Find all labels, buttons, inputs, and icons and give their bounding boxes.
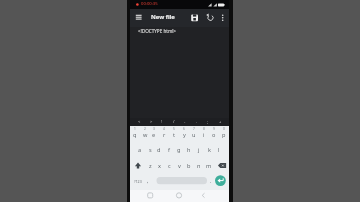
staticText: ?123 <box>134 179 142 184</box>
staticText: l <box>218 146 220 154</box>
staticText: New file <box>151 13 175 21</box>
staticText: e <box>152 131 156 139</box>
staticText: . <box>210 177 212 184</box>
staticText: b <box>187 162 191 170</box>
staticText: 2 <box>144 127 146 131</box>
staticText: j <box>198 146 200 154</box>
staticText: z <box>149 162 152 170</box>
staticText: < <box>138 119 141 124</box>
staticText: 3 <box>153 127 155 131</box>
staticText: d <box>157 146 161 154</box>
staticText: n <box>197 162 201 170</box>
staticText: 9 <box>213 127 215 131</box>
staticText: 00:00:35 <box>141 1 158 7</box>
staticText: > <box>150 119 153 124</box>
staticText: f <box>168 146 170 154</box>
staticText: w <box>143 131 148 139</box>
staticText: q <box>133 131 137 139</box>
staticText: h <box>187 146 191 154</box>
staticText: 8 <box>203 127 205 131</box>
staticText: y <box>183 131 186 139</box>
staticText: s <box>149 146 152 154</box>
staticText: ; <box>207 119 209 124</box>
staticText: 5 <box>173 127 175 131</box>
staticText: 1 <box>134 127 136 131</box>
staticText: , <box>147 177 149 184</box>
staticText: <!DOCTYPE html> <box>138 28 176 34</box>
staticText: a <box>138 146 142 154</box>
staticText: / <box>173 119 175 124</box>
staticText: c <box>168 162 171 170</box>
staticText: + <box>219 119 222 124</box>
staticText: o <box>212 131 216 139</box>
staticText: m <box>206 162 212 170</box>
staticText: g <box>177 146 181 154</box>
staticText: 7 <box>193 127 195 131</box>
staticText: ! <box>161 119 163 124</box>
staticText: i <box>203 131 205 139</box>
staticText: t <box>173 131 176 139</box>
staticText: u <box>192 131 196 139</box>
staticText: r <box>163 131 166 139</box>
staticText: k <box>208 146 211 154</box>
staticText: p <box>222 131 226 139</box>
staticText: v <box>178 162 181 170</box>
staticText: . <box>196 119 198 124</box>
staticText: x <box>158 162 161 170</box>
staticText: - <box>184 119 186 124</box>
staticText: 6 <box>183 127 185 131</box>
staticText: 0 <box>223 127 225 131</box>
staticText: 4 <box>163 127 165 131</box>
